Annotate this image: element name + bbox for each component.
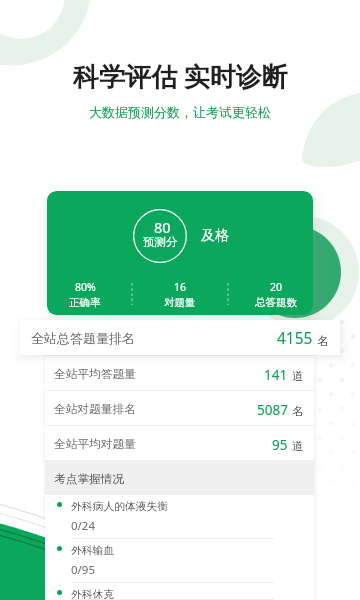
staticText: 20 [270, 280, 283, 294]
staticText: 总答题数 [255, 296, 297, 309]
button[interactable]: 外科休克 [45, 583, 314, 600]
staticText: 16 [174, 280, 187, 294]
staticText: 外科休克 [71, 588, 115, 600]
staticText: 名 [317, 333, 329, 348]
staticText: 4155 [277, 327, 313, 348]
staticText: 141 [264, 366, 288, 384]
staticText: 及格 [201, 227, 229, 245]
staticText: 道 [292, 439, 304, 454]
staticText: 全站平均对题量 [54, 437, 136, 452]
staticText: 大数据预测分数，让考试更轻松 [89, 104, 271, 120]
staticText: 5087 [257, 401, 288, 419]
staticText: 全站对题量排名 [54, 402, 136, 417]
staticText: 道 [292, 369, 304, 384]
staticText: 名 [292, 404, 304, 419]
staticText: 考点掌握情况 [54, 472, 125, 487]
staticText: 科学评估 实时诊断 [73, 58, 288, 94]
button[interactable]: 外科病人的体液失衡 [45, 495, 314, 539]
staticText: 外科病人的体液失衡 [71, 500, 169, 514]
button[interactable]: 外科输血 [45, 539, 314, 583]
staticText: 80% [75, 280, 96, 294]
button[interactable]: 全站对题量排名 [45, 390, 314, 425]
staticText: 95 [272, 436, 288, 454]
staticText: 全站总答题量排名 [31, 330, 135, 346]
staticText: 80 [154, 217, 171, 237]
button[interactable]: 全站平均对题量 [45, 425, 314, 460]
staticText: 对题量 [164, 296, 196, 309]
staticText: 全站平均答题量 [54, 367, 136, 382]
staticText: 0/95 [71, 562, 96, 578]
staticText: 0/24 [71, 518, 96, 534]
button[interactable]: 全站平均答题量 [45, 355, 314, 390]
button[interactable]: 全站总答题量排名 [20, 320, 340, 355]
staticText: 外科输血 [71, 544, 115, 558]
staticText: 预测分 [143, 235, 178, 249]
staticText: 正确率 [69, 296, 101, 309]
